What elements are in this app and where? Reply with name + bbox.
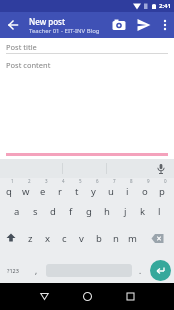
button[interactable]: Post content — [0, 60, 174, 153]
staticText: 1 — [11, 178, 14, 184]
staticText: d — [50, 205, 56, 218]
staticText: t — [75, 185, 79, 198]
staticText: e — [40, 185, 46, 198]
button[interactable]: c — [56, 224, 73, 252]
button[interactable]: 6 — [85, 178, 102, 199]
button[interactable]: g — [80, 199, 98, 224]
button[interactable]: 2 — [17, 178, 34, 199]
staticText: u — [108, 185, 114, 198]
button[interactable]: d — [44, 199, 62, 224]
button[interactable]: k — [134, 199, 152, 224]
button[interactable]: z — [22, 224, 39, 252]
staticText: Post title — [6, 42, 37, 52]
button[interactable]: Post title — [0, 42, 174, 52]
staticText: 2 — [28, 178, 31, 184]
staticText: o — [142, 185, 148, 198]
staticText: x — [45, 232, 51, 245]
button[interactable]: s — [26, 199, 44, 224]
button[interactable] — [0, 12, 26, 38]
staticText: s — [33, 205, 38, 218]
button[interactable]: 8 — [119, 178, 136, 199]
button[interactable]: , — [26, 258, 46, 283]
button[interactable] — [79, 288, 95, 304]
button[interactable]: n — [107, 224, 124, 252]
staticText: New post — [29, 16, 65, 27]
button[interactable]: ?123 — [0, 258, 26, 283]
staticText: y — [91, 185, 96, 198]
button[interactable]: 9 — [136, 178, 153, 199]
button[interactable]: 4 — [51, 178, 68, 199]
button[interactable]: 1 — [0, 178, 17, 199]
staticText: 9 — [147, 178, 150, 184]
staticText: b — [96, 232, 102, 245]
staticText: l — [158, 205, 161, 218]
button[interactable]: 7 — [102, 178, 119, 199]
staticText: v — [79, 232, 84, 245]
staticText: 4 — [62, 178, 65, 184]
button[interactable]: b — [90, 224, 107, 252]
staticText: p — [159, 185, 165, 198]
staticText: n — [113, 232, 119, 245]
staticText: z — [28, 232, 33, 245]
button[interactable] — [132, 13, 156, 37]
staticText: w — [22, 185, 30, 198]
staticText: Post content — [6, 60, 51, 70]
button[interactable]: a — [8, 199, 26, 224]
staticText: . — [139, 265, 142, 276]
button[interactable] — [0, 224, 22, 252]
staticText: c — [62, 232, 67, 245]
staticText: 8 — [130, 178, 133, 184]
staticText: 5 — [79, 178, 82, 184]
button[interactable]: l — [152, 199, 166, 224]
button[interactable]: v — [73, 224, 90, 252]
button[interactable]: m — [124, 224, 141, 252]
staticText: m — [128, 232, 137, 245]
staticText: k — [140, 205, 146, 218]
button[interactable] — [154, 162, 168, 176]
staticText: , — [35, 265, 38, 276]
staticText: 7 — [113, 178, 116, 184]
button[interactable]: h — [98, 199, 116, 224]
button[interactable]: j — [116, 199, 134, 224]
button[interactable]: 3 — [34, 178, 51, 199]
button[interactable]: f — [62, 199, 80, 224]
button[interactable] — [36, 288, 52, 304]
button[interactable]: x — [39, 224, 56, 252]
staticText: h — [104, 205, 110, 218]
staticText: ?123 — [7, 267, 19, 274]
staticText: q — [6, 185, 12, 198]
button[interactable]: 5 — [68, 178, 85, 199]
button[interactable] — [141, 224, 174, 252]
staticText: 2:41 — [159, 2, 171, 10]
staticText: 0 — [164, 178, 167, 184]
staticText: g — [86, 205, 92, 218]
staticText: r — [58, 185, 62, 198]
button[interactable] — [122, 288, 138, 304]
staticText: f — [69, 205, 73, 218]
staticText: a — [14, 205, 20, 218]
button[interactable] — [156, 13, 174, 37]
staticText: Teacher 01 - EIT-INV Blog — [29, 27, 100, 35]
button[interactable]: . — [132, 258, 148, 283]
staticText: i — [126, 185, 129, 198]
button[interactable]: 0 — [153, 178, 170, 199]
staticText: j — [124, 205, 127, 218]
staticText: 6 — [96, 178, 99, 184]
staticText: 3 — [45, 178, 48, 184]
button[interactable] — [107, 13, 131, 37]
button[interactable] — [150, 260, 171, 281]
